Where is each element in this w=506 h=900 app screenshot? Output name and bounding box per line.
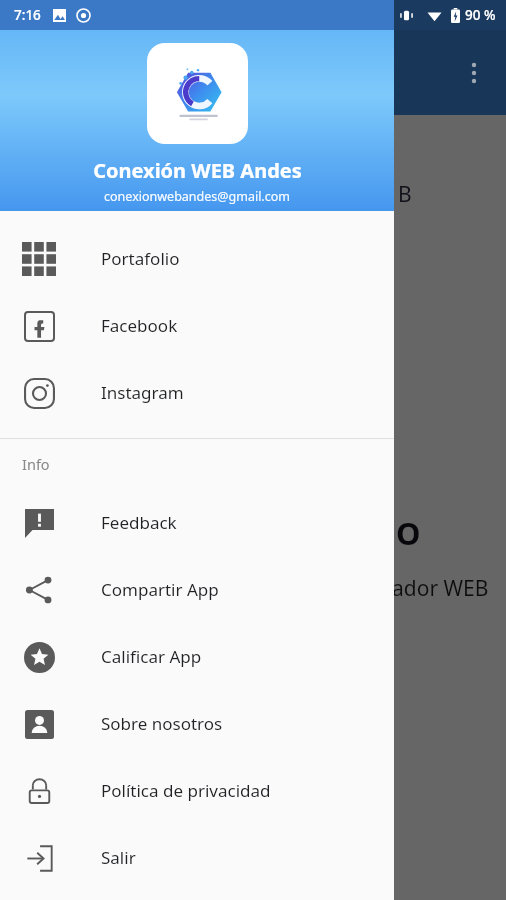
staticText: Portafolio	[101, 247, 180, 270]
staticText: Facebook	[101, 314, 178, 337]
staticText: Política de privacidad	[101, 779, 271, 802]
staticText: conexionwebandes@gmail.com	[104, 188, 290, 205]
button[interactable]: Política de privacidad	[0, 757, 394, 824]
button[interactable]: Facebook	[0, 292, 394, 359]
button[interactable]: More options	[453, 52, 495, 94]
staticText: 7:16	[14, 6, 41, 24]
staticText: Sobre nosotros	[101, 712, 223, 735]
staticText: 90 %	[465, 6, 496, 24]
staticText: B	[398, 180, 412, 209]
button[interactable]: Portafolio	[0, 225, 394, 292]
button[interactable]: Instagram	[0, 359, 394, 426]
button[interactable]: Sobre nosotros	[0, 690, 394, 757]
staticText: Conexión WEB Andes	[93, 157, 302, 184]
button[interactable]: Calificar App	[0, 623, 394, 690]
staticText: Feedback	[101, 511, 177, 534]
button[interactable]: Feedback	[0, 489, 394, 556]
staticText: Calificar App	[101, 645, 202, 668]
staticText: O	[396, 512, 421, 554]
staticText: Compartir App	[101, 578, 219, 601]
button[interactable]: Compartir App	[0, 556, 394, 623]
staticText: Info	[22, 454, 50, 474]
staticText: ador WEB	[392, 574, 489, 603]
staticText: Instagram	[101, 381, 184, 404]
staticText: Salir	[101, 846, 136, 869]
button[interactable]: Salir	[0, 824, 394, 891]
